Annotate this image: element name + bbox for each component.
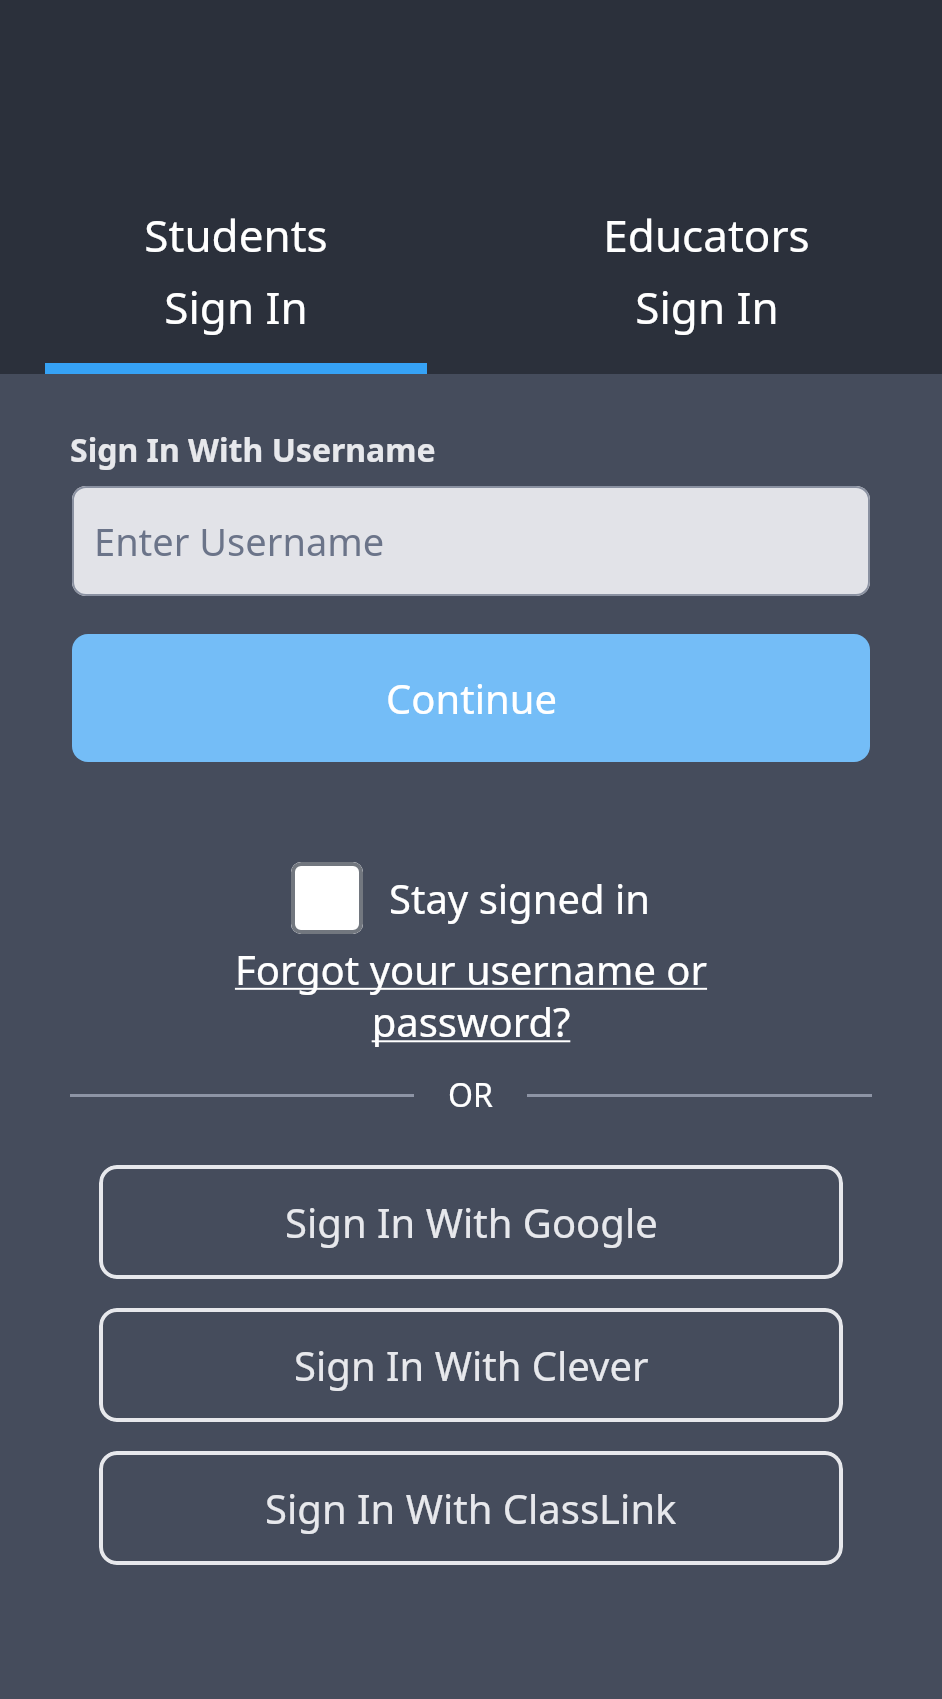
- staticText: Sign In: [635, 277, 779, 337]
- button[interactable]: Educators: [471, 205, 942, 374]
- other: Stay signed in: [291, 862, 363, 934]
- button[interactable]: Sign In With Google: [99, 1165, 843, 1279]
- staticText: Sign In With Username: [70, 428, 436, 472]
- button[interactable]: Sign In With ClassLink: [99, 1451, 843, 1565]
- staticText: Educators: [603, 205, 810, 265]
- staticText: OR: [448, 1073, 493, 1117]
- staticText: Students: [144, 205, 328, 265]
- button[interactable]: Sign In With Clever: [99, 1308, 843, 1422]
- staticText: Continue: [386, 671, 557, 725]
- staticText: Sign In With Google: [285, 1195, 658, 1249]
- staticText: Stay signed in: [389, 871, 651, 925]
- staticText: Sign In With Clever: [294, 1338, 649, 1392]
- staticText: Sign In: [164, 277, 308, 337]
- staticText: Sign In With ClassLink: [265, 1481, 677, 1535]
- button[interactable]: Students: [0, 205, 471, 374]
- button[interactable]: Continue: [72, 634, 870, 762]
- button[interactable]: Enter Username: [72, 486, 870, 596]
- button[interactable]: Forgot your username or password?: [180, 942, 762, 1049]
- staticText: Enter Username: [94, 515, 385, 567]
- button[interactable]: Stay signed in: [291, 862, 651, 934]
- staticText: Forgot your username or password?: [180, 942, 762, 1049]
